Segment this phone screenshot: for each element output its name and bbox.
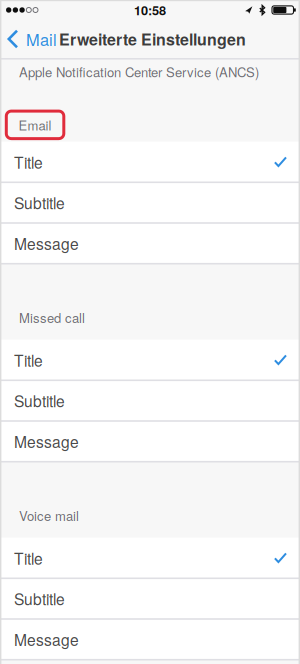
staticText: Title xyxy=(14,151,43,173)
staticText: Email xyxy=(19,115,52,134)
staticText: Subtitle xyxy=(14,587,65,610)
button[interactable]: Message xyxy=(0,223,300,264)
button[interactable]: Message xyxy=(0,421,300,462)
staticText: Apple Notification Center Service (ANCS) xyxy=(19,62,259,81)
button[interactable]: Mail xyxy=(0,20,59,58)
button[interactable]: Subtitle xyxy=(0,578,300,619)
staticText: Message xyxy=(14,628,79,650)
staticText: Erweiterte Einstellungen xyxy=(59,27,246,50)
button[interactable]: Subtitle xyxy=(0,182,300,223)
staticText: Message xyxy=(14,430,79,452)
button[interactable]: Title xyxy=(0,538,300,578)
staticText: Missed call xyxy=(19,308,85,327)
button[interactable]: Title xyxy=(0,142,300,182)
button[interactable]: Subtitle xyxy=(0,380,300,421)
button[interactable]: Message xyxy=(0,619,300,660)
staticText: 10:58 xyxy=(134,1,166,19)
staticText: Title xyxy=(14,547,43,569)
staticText: Subtitle xyxy=(14,191,65,214)
staticText: Title xyxy=(14,349,43,371)
staticText: Subtitle xyxy=(14,389,65,412)
button[interactable]: Title xyxy=(0,340,300,380)
staticText: Voice mail xyxy=(19,506,79,525)
staticText: Message xyxy=(14,232,79,254)
staticText: Mail xyxy=(26,27,57,51)
